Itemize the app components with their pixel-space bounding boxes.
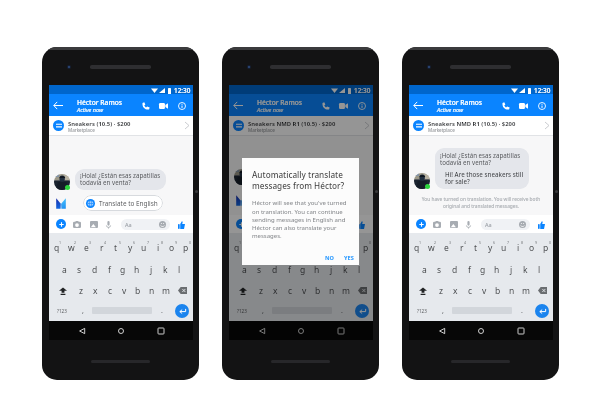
button[interactable]: Enter [530,301,553,320]
button[interactable]: Enter [350,301,373,320]
button[interactable]: d [447,259,462,280]
button[interactable]: 1 [49,237,64,259]
button[interactable]: v [297,280,311,301]
button[interactable]: Back [255,324,269,338]
button[interactable]: f [282,259,296,280]
button[interactable]: Sneakers NMD R1 (10.5) · $200 [229,116,373,135]
button[interactable]: 2 [424,237,439,259]
button[interactable]: j [324,259,338,280]
button[interactable]: . [513,301,530,320]
button[interactable]: d [87,259,102,280]
button[interactable]: Voice message [104,220,113,229]
button[interactable]: 4 [94,237,109,259]
button[interactable]: Camera [252,220,261,229]
button[interactable]: 9 [165,237,179,259]
button[interactable]: 1 [409,237,424,259]
button[interactable]: Like [537,220,546,229]
button[interactable]: Translate to English [263,192,343,208]
button[interactable]: , [434,301,451,320]
button[interactable]: Like [177,220,186,229]
button[interactable]: Gallery [449,220,458,229]
button[interactable]: 8 [151,237,165,259]
button[interactable]: Add [56,219,66,229]
button[interactable]: Aa [121,219,170,230]
button[interactable]: 2 [64,237,79,259]
button[interactable]: h [490,259,504,280]
button[interactable]: m [519,280,533,301]
button[interactable]: c [283,280,297,301]
button[interactable]: Back [75,324,89,338]
button[interactable]: , [254,301,271,320]
button[interactable]: Add [236,219,246,229]
button[interactable]: k [158,259,172,280]
button[interactable]: . [153,301,170,320]
button[interactable]: Recents [154,324,168,338]
button[interactable]: 4 [454,237,469,259]
button[interactable]: v [477,280,491,301]
button[interactable]: 5 [469,237,483,259]
button[interactable]: Gallery [269,220,278,229]
button[interactable]: k [518,259,532,280]
button[interactable]: 7 [137,237,151,259]
button[interactable]: z [73,280,88,301]
button[interactable]: 5 [109,237,123,259]
button[interactable]: x [448,280,463,301]
button[interactable]: k [338,259,352,280]
button[interactable]: ?123 [409,301,434,320]
button[interactable]: l [532,259,546,280]
button[interactable]: n [505,280,519,301]
button[interactable]: 0 [179,237,193,259]
button[interactable]: c [463,280,477,301]
button[interactable]: s [72,259,87,280]
button[interactable]: Info [175,99,188,112]
button[interactable]: Call [319,99,332,112]
button[interactable]: Voice message [284,220,293,229]
button[interactable]: Recents [334,324,348,338]
button[interactable]: Shift [233,280,253,301]
button[interactable]: Back [231,98,245,112]
button[interactable]: Info [355,99,368,112]
button[interactable]: 3 [259,237,274,259]
button[interactable]: 8 [331,237,345,259]
button[interactable]: g [476,259,490,280]
button[interactable]: s [432,259,447,280]
button[interactable]: Shift [53,280,73,301]
button[interactable]: Gallery [89,220,98,229]
button[interactable]: Backspace [533,280,552,301]
button[interactable]: b [131,280,145,301]
button[interactable]: Back [435,324,449,338]
button[interactable]: Aa [301,219,350,230]
button[interactable]: Like [357,220,366,229]
button[interactable]: Backspace [173,280,192,301]
button[interactable]: n [145,280,159,301]
button[interactable]: 6 [123,237,137,259]
button[interactable]: m [159,280,173,301]
button[interactable]: Translate to English [83,195,163,211]
button[interactable]: Back [51,98,65,112]
button[interactable]: j [504,259,518,280]
button[interactable]: g [296,259,310,280]
button[interactable]: f [102,259,116,280]
button[interactable]: n [325,280,339,301]
button[interactable]: Home [114,324,128,338]
button[interactable]: b [491,280,505,301]
button[interactable]: Voice message [464,220,473,229]
button[interactable]: h [130,259,144,280]
button[interactable]: Sneakers (10.5) · $200 [49,116,193,135]
button[interactable]: l [352,259,366,280]
button[interactable]: 4 [274,237,289,259]
button[interactable]: 9 [345,237,359,259]
button[interactable]: f [462,259,476,280]
button[interactable]: m [339,280,353,301]
button[interactable]: 0 [359,237,373,259]
button[interactable]: Camera [432,220,441,229]
button[interactable]: a [57,259,72,280]
button[interactable]: 9 [525,237,539,259]
button[interactable]: Home [474,324,488,338]
button[interactable]: d [267,259,282,280]
